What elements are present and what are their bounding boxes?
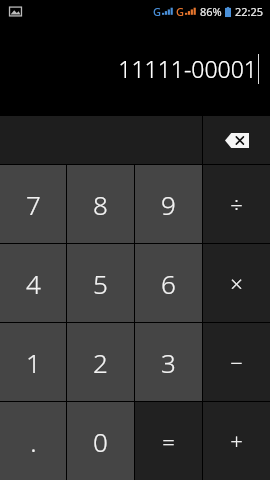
button[interactable]: × [203,244,270,322]
button[interactable]: − [203,323,270,401]
button[interactable]: 1 [0,323,66,401]
button[interactable]: 5 [67,244,134,322]
button[interactable]: + [203,402,270,480]
staticText: 3 [161,345,176,380]
staticText: 4 [26,266,41,301]
button[interactable]: . [0,402,66,480]
staticText: + [230,426,243,456]
staticText: 11111-00001 [118,53,257,84]
staticText: × [230,268,243,298]
button[interactable]: Backspace [203,116,270,164]
staticText: − [230,347,243,377]
button[interactable]: 9 [135,165,202,243]
button[interactable]: 7 [0,165,66,243]
button[interactable]: ÷ [203,165,270,243]
staticText: 6 [161,266,176,301]
staticText: G [176,4,184,19]
staticText: 86% [200,4,222,19]
button[interactable]: 2 [67,323,134,401]
button[interactable]: 0 [67,402,134,480]
staticText: G [153,4,161,19]
staticText: . [30,424,37,459]
button[interactable]: 3 [135,323,202,401]
staticText: 7 [26,187,41,222]
staticText: 0 [93,424,108,459]
staticText: 2 [93,345,108,380]
staticText: 8 [93,187,108,222]
staticText: 5 [93,266,108,301]
button[interactable]: 8 [67,165,134,243]
staticText: 9 [161,187,176,222]
staticText: ÷ [230,189,243,219]
staticText: = [162,426,175,456]
button[interactable]: 6 [135,244,202,322]
staticText: 22:25 [235,4,264,19]
staticText: 1 [26,345,41,380]
button[interactable]: = [135,402,202,480]
button[interactable]: 4 [0,244,66,322]
